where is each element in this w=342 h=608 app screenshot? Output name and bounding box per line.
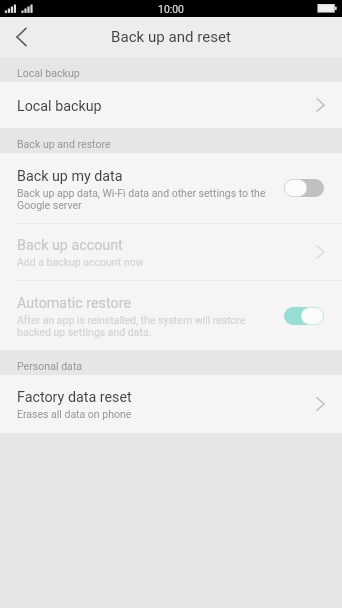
button[interactable]: Back up account <box>0 224 342 280</box>
staticText: Local backup <box>17 98 102 115</box>
staticText: Erases all data on phone <box>17 408 132 420</box>
button[interactable]: Factory data reset <box>0 375 342 433</box>
staticText: Local backup <box>17 67 80 79</box>
button[interactable]: Switch on <box>284 307 324 325</box>
staticText: Back up and restore <box>17 138 111 150</box>
staticText: Add a backup account now <box>17 256 144 268</box>
staticText: Back up and reset <box>0 28 342 46</box>
staticText: Back up account <box>17 237 123 254</box>
staticText: Personal data <box>17 360 83 372</box>
button[interactable]: Back <box>0 17 42 57</box>
button[interactable]: Automatic restore <box>0 281 342 350</box>
staticText: Automatic restore <box>17 295 131 312</box>
button[interactable]: Switch off <box>284 179 324 197</box>
staticText: Back up app data, Wi-Fi data and other s… <box>17 187 266 211</box>
staticText: 10:00 <box>0 3 342 15</box>
staticText: Back up my data <box>17 168 123 185</box>
button[interactable]: Back up my data <box>0 153 342 223</box>
staticText: Factory data reset <box>17 389 132 406</box>
button[interactable]: Local backup <box>0 82 342 128</box>
staticText: After an app is reinstalled, the system … <box>17 314 246 338</box>
